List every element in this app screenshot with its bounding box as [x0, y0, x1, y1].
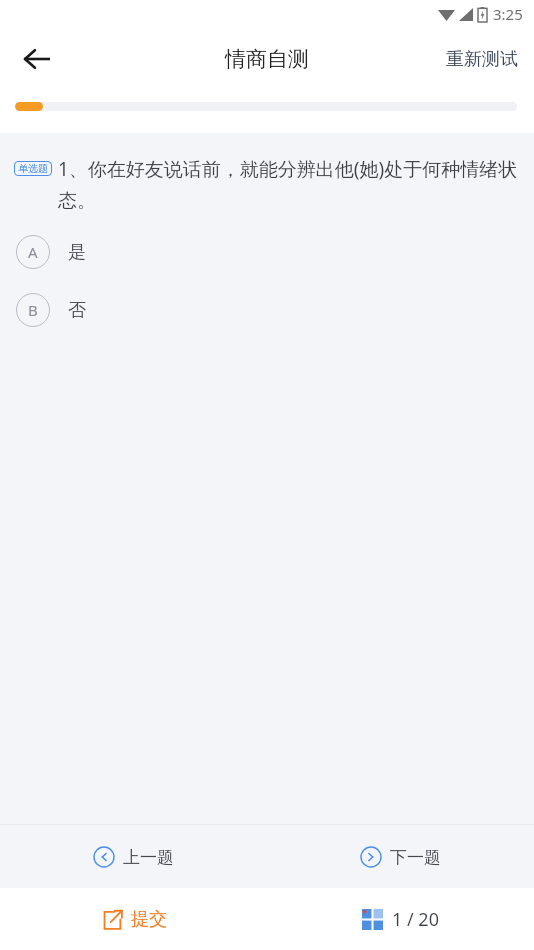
- button[interactable]: A: [0, 231, 534, 273]
- button[interactable]: 提交: [0, 888, 267, 950]
- button[interactable]: B: [0, 289, 534, 331]
- button[interactable]: Back: [14, 36, 60, 82]
- staticText: 3:25: [493, 4, 523, 24]
- staticText: 下一题: [390, 847, 441, 868]
- staticText: B: [28, 300, 38, 320]
- button[interactable]: 1 / 20: [267, 888, 534, 950]
- staticText: 提交: [131, 908, 167, 931]
- staticText: 单选题: [18, 162, 48, 175]
- button[interactable]: 上一题: [0, 825, 267, 888]
- staticText: 重新测试: [446, 48, 518, 71]
- staticText: 否: [68, 299, 86, 322]
- staticText: A: [28, 242, 38, 262]
- staticText: 是: [68, 241, 86, 264]
- button[interactable]: 重新测试: [430, 38, 534, 81]
- staticText: 上一题: [123, 847, 174, 868]
- staticText: 1 / 20: [392, 907, 439, 932]
- staticText: 1、你在好友说话前，就能分辨出他(她)处于何种情绪状态。: [58, 156, 520, 213]
- button[interactable]: 下一题: [267, 825, 534, 888]
- staticText: 情商自测: [225, 46, 309, 72]
